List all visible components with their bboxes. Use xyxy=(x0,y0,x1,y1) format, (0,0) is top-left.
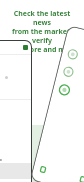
button[interactable]: Store xyxy=(23,45,28,50)
button[interactable]: Navigation item xyxy=(39,165,47,174)
button[interactable]: Feature xyxy=(58,84,70,96)
button[interactable]: Feature xyxy=(67,49,78,60)
button[interactable]: Feature xyxy=(63,66,74,77)
button[interactable]: Navigation item xyxy=(79,175,84,182)
staticText: Check the latest news from the market, v… xyxy=(5,9,79,54)
button[interactable]: Store xyxy=(0,41,31,182)
button[interactable]: Feature xyxy=(31,26,84,182)
